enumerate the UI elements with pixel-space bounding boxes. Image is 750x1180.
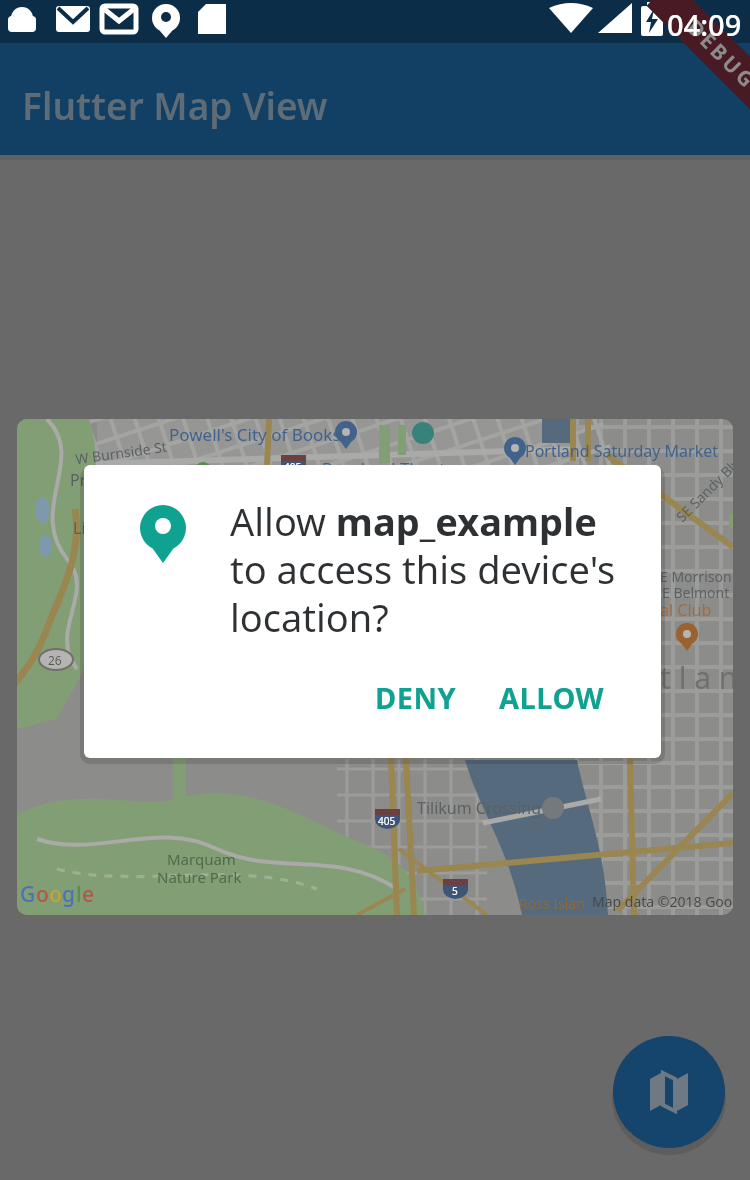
- staticText: Allow map_example to access this device'…: [230, 495, 658, 643]
- staticText: Marquam: [167, 849, 236, 869]
- staticText: Roseland Theater: [322, 457, 462, 480]
- staticText: 04:09: [667, 5, 742, 44]
- staticText: SE Sandy Blvd: [672, 447, 733, 526]
- staticText: Pr: [70, 469, 87, 491]
- staticText: Portland Saturday Market: [525, 440, 719, 462]
- staticText: E Morrison St: [660, 567, 733, 586]
- staticText: 405: [378, 814, 396, 828]
- button[interactable]: DENY: [375, 678, 457, 717]
- staticText: o: [49, 880, 62, 909]
- staticText: Map data ©2018 Goo: [592, 892, 733, 911]
- staticText: 5: [452, 884, 458, 898]
- staticText: DEBUG: [680, 13, 750, 96]
- staticText: E Belmont St: [662, 583, 733, 602]
- staticText: G: [20, 880, 36, 909]
- staticText: Nature Park: [157, 867, 242, 887]
- staticText: Li: [73, 517, 86, 539]
- staticText: t l a n: [660, 657, 733, 698]
- staticText: Ross Islan: [519, 894, 585, 913]
- staticText: l: [76, 880, 82, 909]
- staticText: al Club: [660, 599, 712, 621]
- staticText: DENY: [375, 678, 457, 717]
- staticText: g: [62, 880, 76, 909]
- button[interactable]: ALLOW: [499, 678, 605, 717]
- staticText: 26: [48, 652, 62, 668]
- staticText: W Burnside St: [74, 437, 169, 468]
- staticText: ALLOW: [499, 678, 605, 717]
- button[interactable]: [613, 1036, 725, 1148]
- staticText: Tilikum Crossing: [417, 797, 542, 819]
- staticText: Powell's City of Books: [169, 423, 341, 446]
- staticText: 405: [284, 460, 302, 474]
- staticText: Flutter Map View: [22, 80, 328, 130]
- staticText: o: [36, 880, 49, 909]
- staticText: e: [82, 880, 95, 909]
